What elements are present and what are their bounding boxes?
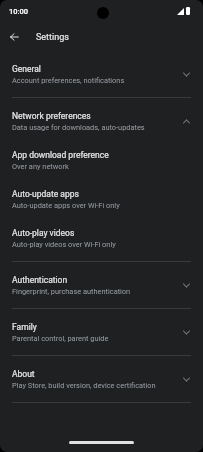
- staticText: Auto-play videos over Wi-Fi only: [12, 240, 116, 249]
- staticText: Authentication: [12, 275, 68, 285]
- staticText: Family: [12, 322, 37, 332]
- staticText: Parental control, parent guide: [12, 334, 109, 343]
- button[interactable]: Network preferences: [0, 98, 203, 144]
- button[interactable]: Auto-play videos: [0, 222, 203, 261]
- staticText: Auto-play videos: [12, 228, 75, 238]
- button[interactable]: Family: [0, 309, 203, 355]
- button[interactable]: Auto-update apps: [0, 183, 203, 222]
- staticText: About: [12, 369, 35, 379]
- staticText: Auto-update apps: [12, 189, 79, 199]
- staticText: 10:00: [9, 7, 29, 16]
- staticText: Over any network: [12, 162, 69, 171]
- button[interactable]: General: [0, 51, 203, 97]
- staticText: Data usage for downloads, auto-updates: [12, 123, 145, 132]
- button[interactable]: Back: [3, 25, 26, 48]
- staticText: Account preferences, notifications: [12, 76, 125, 85]
- staticText: General: [12, 64, 41, 74]
- button[interactable]: Authentication: [0, 262, 203, 308]
- staticText: App download preference: [12, 150, 109, 160]
- staticText: Fingerprint, purchase authentication: [12, 287, 131, 296]
- staticText: Play Store, build version, device certif…: [12, 381, 156, 390]
- staticText: Network preferences: [12, 111, 91, 121]
- staticText: Auto-update apps over Wi-Fi only: [12, 201, 120, 210]
- button[interactable]: About: [0, 356, 203, 402]
- button[interactable]: App download preference: [0, 144, 203, 183]
- staticText: Settings: [36, 32, 69, 43]
